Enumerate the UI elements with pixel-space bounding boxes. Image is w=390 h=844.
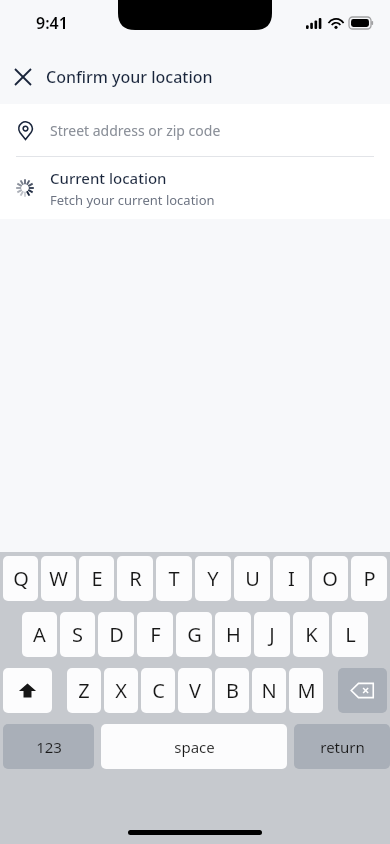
button[interactable]: U xyxy=(234,556,270,601)
button[interactable]: D xyxy=(98,612,134,657)
button[interactable]: V xyxy=(178,668,212,713)
button[interactable]: Current location xyxy=(0,157,390,219)
button[interactable]: F xyxy=(137,612,173,657)
button[interactable]: A xyxy=(22,612,57,657)
staticText: Street address or zip code xyxy=(50,121,221,140)
staticText: L xyxy=(345,621,356,648)
staticText: Q xyxy=(13,565,29,592)
staticText: M xyxy=(297,677,316,704)
staticText: J xyxy=(269,621,275,648)
button[interactable]: Street address or zip code xyxy=(0,104,390,156)
button[interactable]: J xyxy=(254,612,290,657)
button[interactable]: Shift xyxy=(3,668,52,713)
staticText: 9:41 xyxy=(36,12,68,34)
button[interactable]: M xyxy=(289,668,323,713)
button[interactable]: E xyxy=(79,556,114,601)
button[interactable]: space xyxy=(101,724,287,769)
staticText: K xyxy=(305,621,318,648)
button[interactable]: return xyxy=(294,724,390,769)
staticText: P xyxy=(363,565,376,592)
button[interactable]: W xyxy=(41,556,76,601)
staticText: Fetch your current location xyxy=(50,191,215,209)
staticText: Confirm your location xyxy=(46,66,213,88)
button[interactable]: O xyxy=(312,556,348,601)
button[interactable]: X xyxy=(104,668,138,713)
staticText: H xyxy=(226,621,241,648)
button[interactable]: C xyxy=(141,668,175,713)
staticText: S xyxy=(72,621,83,648)
button[interactable]: G xyxy=(176,612,212,657)
staticText: R xyxy=(129,565,142,592)
staticText: C xyxy=(152,677,165,704)
staticText: return xyxy=(320,737,365,757)
staticText: W xyxy=(49,565,68,592)
staticText: F xyxy=(150,621,161,648)
staticText: Y xyxy=(207,565,219,592)
staticText: V xyxy=(189,677,201,704)
staticText: A xyxy=(33,621,46,648)
staticText: O xyxy=(322,565,338,592)
staticText: D xyxy=(109,621,124,648)
button[interactable]: H xyxy=(215,612,251,657)
button[interactable]: K xyxy=(293,612,329,657)
button[interactable]: Y xyxy=(195,556,231,601)
button[interactable]: L xyxy=(332,612,368,657)
staticText: Current location xyxy=(50,168,167,188)
staticText: N xyxy=(261,677,277,704)
button[interactable]: S xyxy=(60,612,95,657)
button[interactable]: Delete xyxy=(338,668,387,713)
button[interactable]: P xyxy=(351,556,387,601)
button[interactable]: 123 xyxy=(3,724,94,769)
button[interactable]: Q xyxy=(3,556,38,601)
staticText: G xyxy=(187,621,202,648)
button[interactable]: N xyxy=(252,668,286,713)
staticText: U xyxy=(245,565,260,592)
button[interactable]: T xyxy=(156,556,192,601)
staticText: I xyxy=(288,565,295,592)
staticText: E xyxy=(91,565,103,592)
button[interactable]: Close xyxy=(0,54,46,100)
button[interactable]: Z xyxy=(67,668,101,713)
button[interactable]: R xyxy=(117,556,153,601)
staticText: Z xyxy=(78,677,90,704)
staticText: X xyxy=(115,677,127,704)
button[interactable]: B xyxy=(215,668,249,713)
staticText: B xyxy=(226,677,239,704)
staticText: 123 xyxy=(36,737,62,757)
button[interactable]: I xyxy=(273,556,309,601)
staticText: space xyxy=(174,737,215,757)
staticText: T xyxy=(168,565,180,592)
